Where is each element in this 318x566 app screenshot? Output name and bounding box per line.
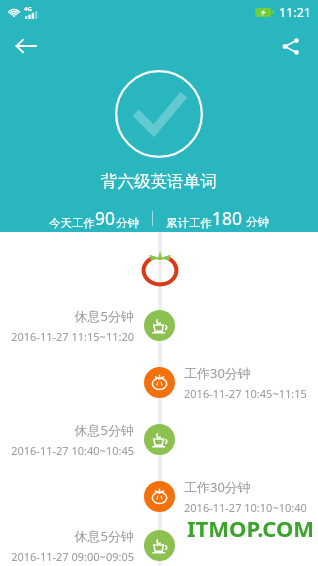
staticText: 休息5分钟 (74, 307, 134, 325)
button[interactable]: Share (269, 25, 311, 67)
staticText: 工作30分钟 (184, 478, 251, 496)
button[interactable]: 休息5分钟 (0, 411, 318, 468)
staticText: 2016-11-27 09:00~09:05 (11, 549, 134, 564)
staticText: 分钟 (243, 214, 269, 230)
button[interactable]: 工作30分钟 (0, 354, 318, 411)
button[interactable]: 休息5分钟 (0, 525, 318, 566)
staticText: 分钟 (116, 216, 139, 230)
staticText: 2016-11-27 10:45~11:15 (184, 386, 307, 401)
staticText: 11:21 (279, 4, 311, 21)
staticText: 今天工作 (49, 216, 95, 230)
staticText: 180 (212, 206, 243, 230)
button[interactable]: 休息5分钟 (0, 297, 318, 354)
staticText: 休息5分钟 (74, 527, 134, 545)
staticText: 休息5分钟 (74, 421, 134, 439)
staticText: 工作30分钟 (184, 364, 251, 382)
staticText: 累计工作 (166, 216, 212, 230)
staticText: ITMOP.COM (187, 513, 315, 543)
button[interactable]: 工作30分钟 (0, 468, 318, 525)
staticText: 2016-11-27 11:15~11:20 (11, 329, 134, 344)
button[interactable]: Back (5, 25, 47, 67)
staticText: 2016-11-27 10:40~10:45 (11, 443, 134, 458)
staticText: 4G (24, 5, 32, 13)
staticText: 背六级英语单词 (101, 171, 217, 192)
staticText: 2016-11-27 10:10~10:40 (184, 500, 307, 515)
staticText: 90 (95, 206, 116, 230)
